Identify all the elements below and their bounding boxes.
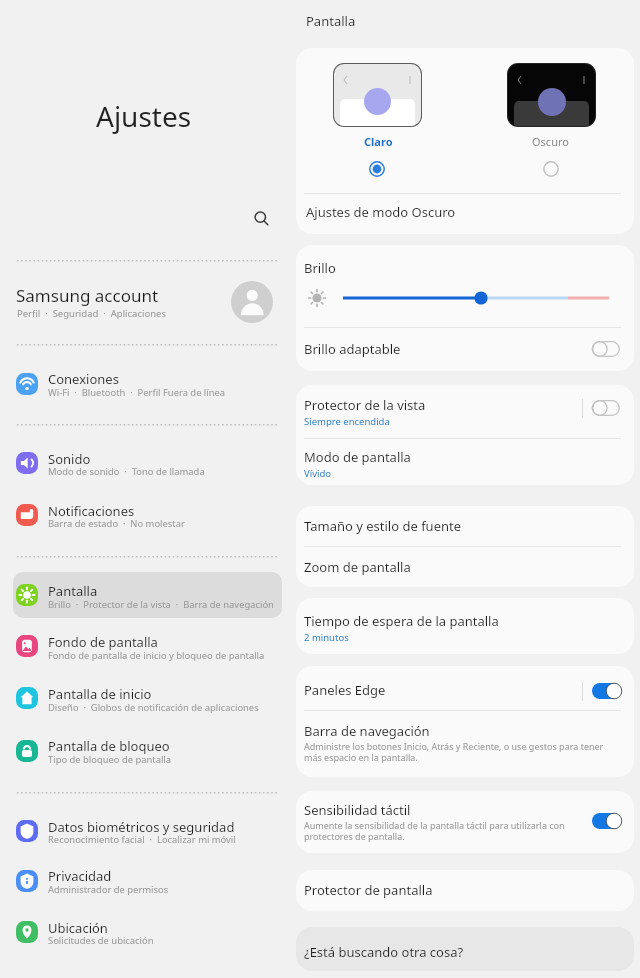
button[interactable]: Modo oscuro: [486, 55, 614, 183]
staticText: Pantalla de bloqueo: [48, 737, 170, 755]
staticText: Diseño · Globos de notificación de aplic…: [48, 701, 259, 714]
staticText: Claro: [364, 134, 393, 149]
staticText: Wi-Fi · Bluetooth · Perfil Fuera de líne…: [48, 386, 226, 399]
button[interactable]: [296, 927, 634, 971]
staticText: Ajustes: [96, 97, 192, 135]
button[interactable]: Activado: [592, 813, 620, 829]
staticText: Modo de pantalla: [304, 448, 411, 466]
staticText: Tipo de bloqueo de pantalla: [48, 753, 172, 766]
button[interactable]: [13, 727, 282, 773]
button[interactable]: [296, 598, 634, 654]
staticText: Pantalla: [306, 12, 356, 30]
button[interactable]: [13, 492, 282, 538]
button[interactable]: [13, 857, 282, 903]
button[interactable]: Desactivado: [592, 400, 620, 416]
button[interactable]: [13, 808, 282, 854]
staticText: Fondo de pantalla: [48, 633, 158, 651]
staticText: Barra de estado · No molestar: [48, 517, 185, 530]
button[interactable]: [296, 711, 634, 777]
button[interactable]: [296, 506, 634, 546]
staticText: Protector de la vista: [304, 396, 426, 414]
staticText: Siempre encendida: [304, 415, 390, 428]
button[interactable]: [13, 909, 282, 955]
button[interactable]: [296, 791, 634, 853]
staticText: Protector de pantalla: [304, 881, 433, 899]
staticText: Perfil · Seguridad · Aplicaciones: [17, 307, 166, 320]
staticText: Zoom de pantalla: [304, 558, 411, 576]
staticText: Sensibilidad táctil: [304, 801, 411, 819]
button[interactable]: Modo claro: [310, 55, 438, 183]
staticText: Ajustes de modo Oscuro: [306, 203, 456, 221]
staticText: Administrador de permisos: [48, 883, 169, 896]
staticText: Conexiones: [48, 370, 119, 388]
button[interactable]: [296, 385, 634, 437]
staticText: Pantalla de inicio: [48, 685, 152, 703]
staticText: Ubicación: [48, 919, 108, 937]
staticText: Pantalla: [48, 582, 98, 600]
staticText: Tiempo de espera de la pantalla: [304, 612, 499, 630]
button[interactable]: [13, 440, 282, 486]
staticText: Tamaño y estilo de fuente: [304, 517, 462, 535]
button[interactable]: [8, 272, 282, 332]
staticText: Brillo · Protector de la vista · Barra d…: [48, 598, 274, 611]
staticText: ¿Está buscando otra cosa?: [304, 943, 464, 961]
staticText: Solicitudes de ubicación: [48, 934, 154, 947]
button[interactable]: [13, 360, 282, 406]
staticText: Brillo: [304, 259, 336, 277]
staticText: Notificaciones: [48, 502, 135, 520]
button[interactable]: Activado: [592, 683, 620, 699]
staticText: Paneles Edge: [304, 681, 386, 699]
button[interactable]: [13, 572, 282, 618]
staticText: Fondo de pantalla de inicio y bloqueo de…: [48, 649, 265, 662]
staticText: 2 minutos: [304, 631, 349, 644]
staticText: Barra de navegación: [304, 722, 430, 740]
staticText: Sonido: [48, 450, 91, 468]
button[interactable]: [296, 870, 634, 911]
staticText: Modo de sonido · Tono de llamada: [48, 465, 205, 478]
staticText: Reconocimiento facial · Localizar mi móv…: [48, 833, 236, 846]
staticText: Vívido: [304, 467, 332, 480]
button[interactable]: [296, 328, 634, 370]
staticText: Brillo adaptable: [304, 340, 401, 358]
staticText: Oscuro: [532, 134, 569, 149]
staticText: Aumente la sensibilidad de la pantalla t…: [304, 819, 576, 843]
button[interactable]: [296, 438, 634, 485]
button[interactable]: [13, 675, 282, 721]
staticText: Administre los botones Inicio, Atrás y R…: [304, 740, 606, 764]
button[interactable]: [13, 623, 282, 669]
staticText: Privacidad: [48, 867, 112, 885]
staticText: Samsung account: [16, 284, 159, 307]
button[interactable]: Buscar: [244, 201, 280, 237]
button[interactable]: Desactivado: [592, 341, 620, 357]
button[interactable]: [296, 194, 634, 232]
staticText: Datos biométricos y seguridad: [48, 818, 235, 836]
button[interactable]: [296, 547, 634, 587]
button[interactable]: [296, 666, 634, 710]
